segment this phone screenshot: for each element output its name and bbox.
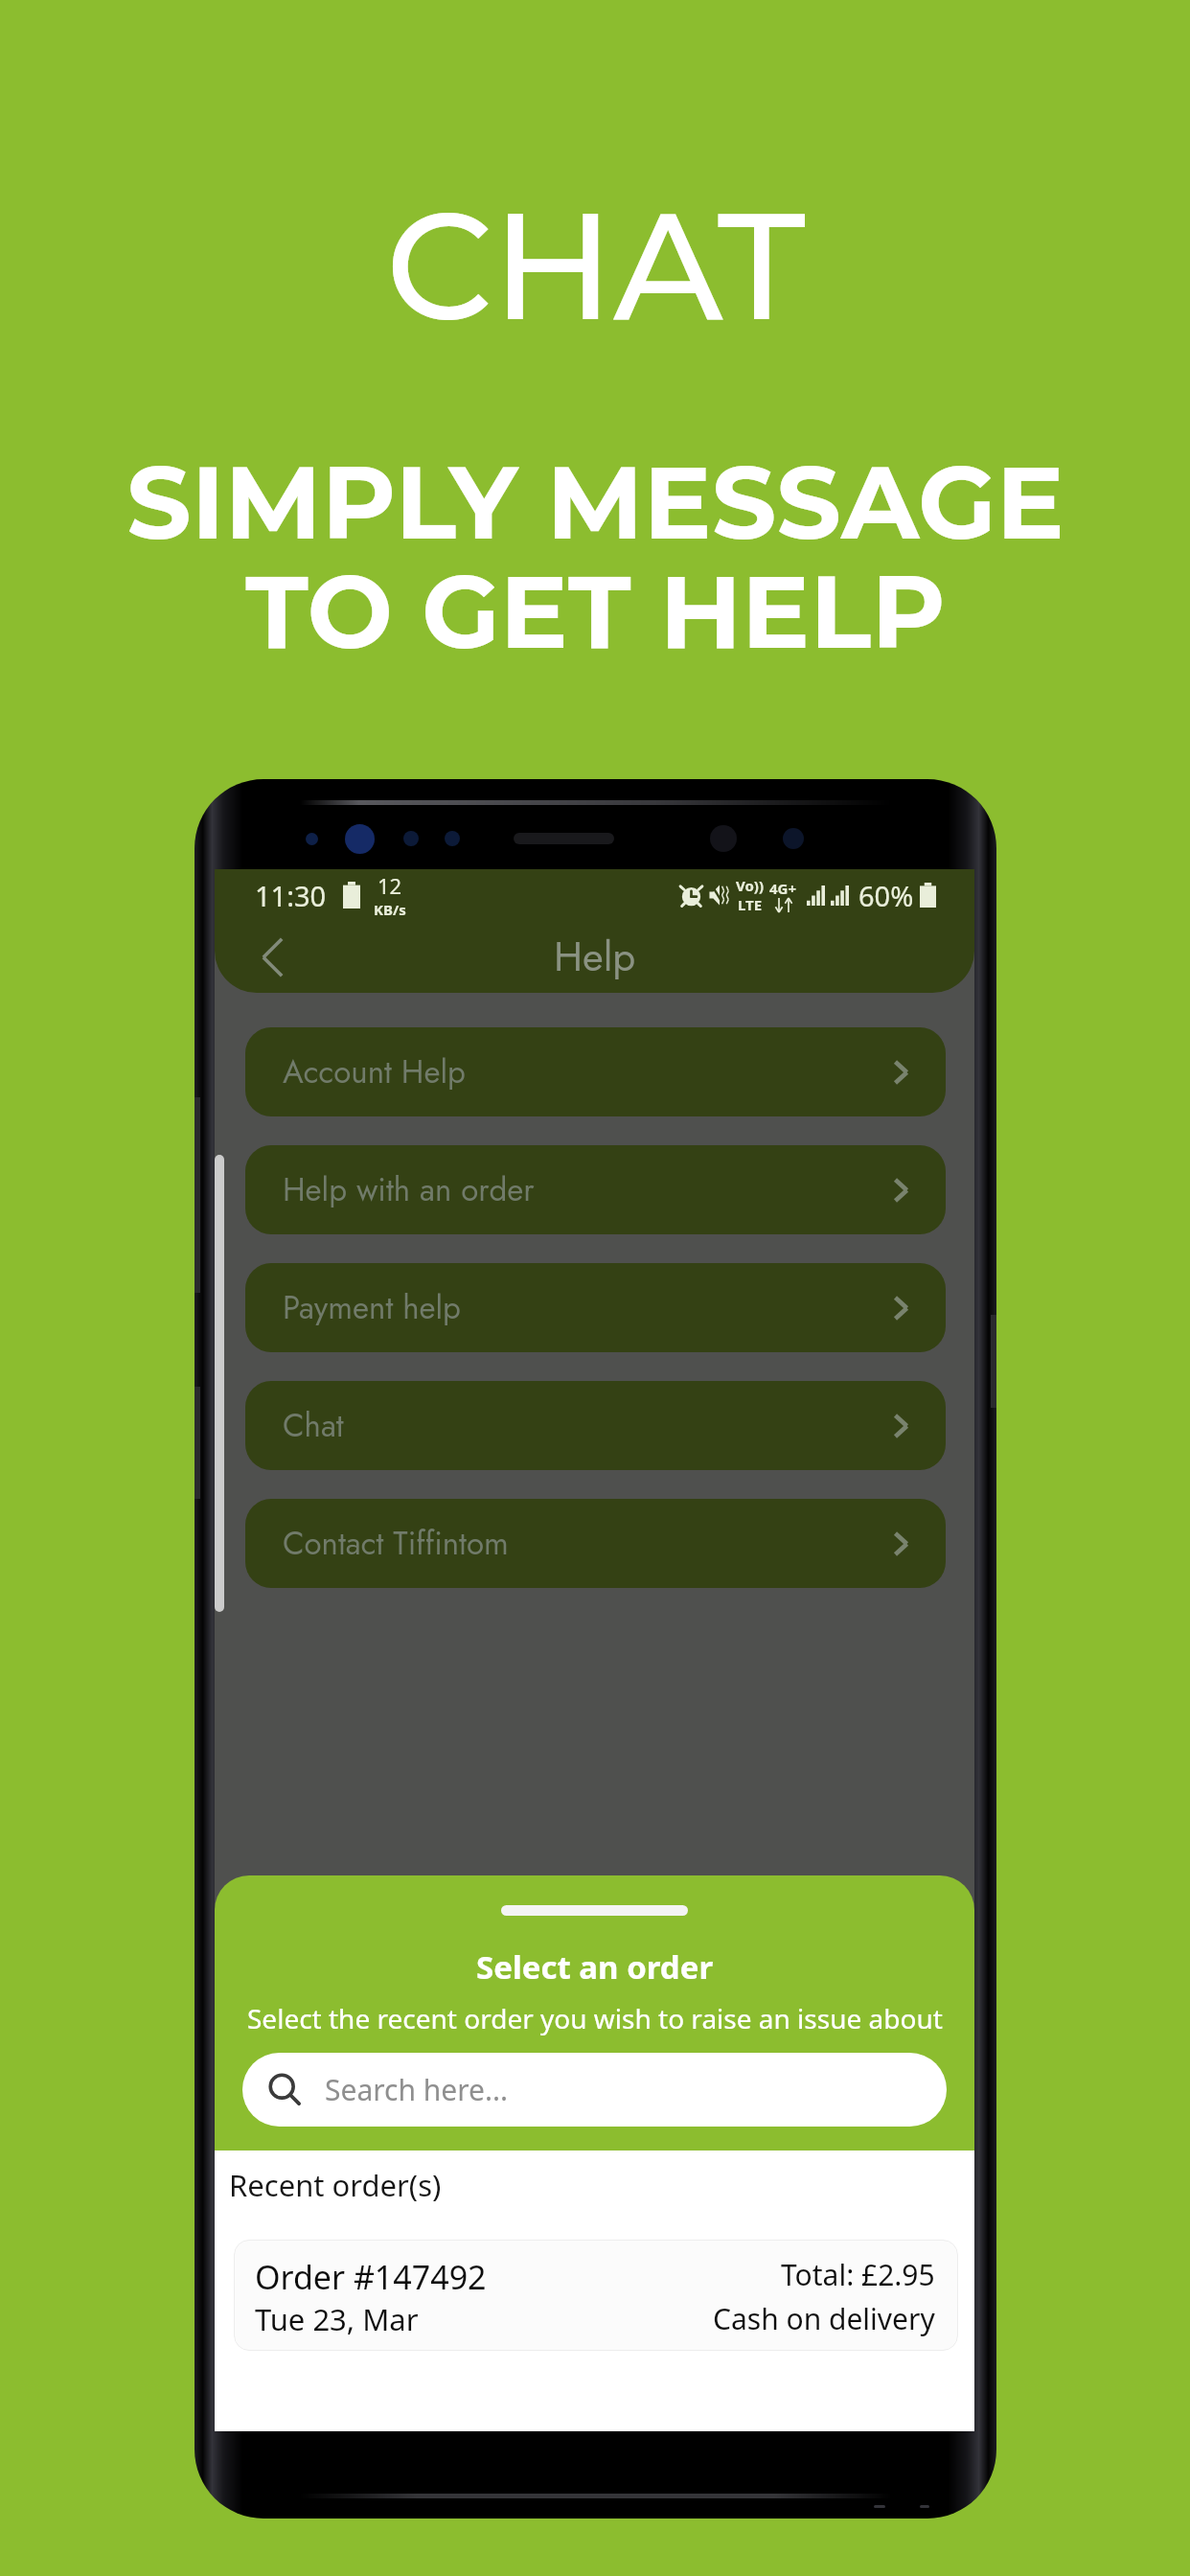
- button[interactable]: Chat: [245, 1381, 946, 1470]
- staticText: Chat: [283, 1403, 344, 1449]
- button[interactable]: Order #147492: [234, 2240, 958, 2351]
- staticText: Recent order(s): [229, 2165, 442, 2205]
- staticText: 4G+: [769, 879, 797, 898]
- staticText: Help with an order: [283, 1167, 535, 1213]
- staticText: KB/s: [374, 900, 406, 919]
- staticText: 60%: [858, 877, 914, 914]
- staticText: Contact Tiffintom: [283, 1521, 509, 1567]
- staticText: Cash on delivery: [713, 2299, 935, 2338]
- staticText: Order #147492: [255, 2255, 487, 2299]
- staticText: Vo)): [736, 876, 764, 895]
- staticText: LTE: [738, 895, 763, 914]
- staticText: SIMPLY MESSAGE TO GET HELP: [126, 440, 1064, 673]
- staticText: Select the recent order you wish to rais…: [247, 2000, 943, 2036]
- button[interactable]: Payment help: [245, 1263, 946, 1352]
- staticText: Tue 23, Mar: [255, 2299, 419, 2339]
- staticText: Help: [554, 928, 636, 986]
- staticText: Total: £2.95: [781, 2255, 935, 2294]
- button[interactable]: Account Help: [245, 1027, 946, 1116]
- button[interactable]: Contact Tiffintom: [245, 1499, 946, 1588]
- staticText: Payment help: [283, 1285, 461, 1331]
- staticText: 11:30: [255, 877, 327, 914]
- staticText: Search here...: [325, 2070, 509, 2109]
- button[interactable]: Search here...: [242, 2053, 947, 2127]
- staticText: 12: [378, 871, 402, 900]
- staticText: Select an order: [476, 1945, 714, 1989]
- staticText: CHAT: [385, 174, 806, 356]
- button[interactable]: Help with an order: [245, 1145, 946, 1234]
- button[interactable]: Back: [244, 930, 300, 985]
- staticText: Account Help: [283, 1049, 466, 1095]
